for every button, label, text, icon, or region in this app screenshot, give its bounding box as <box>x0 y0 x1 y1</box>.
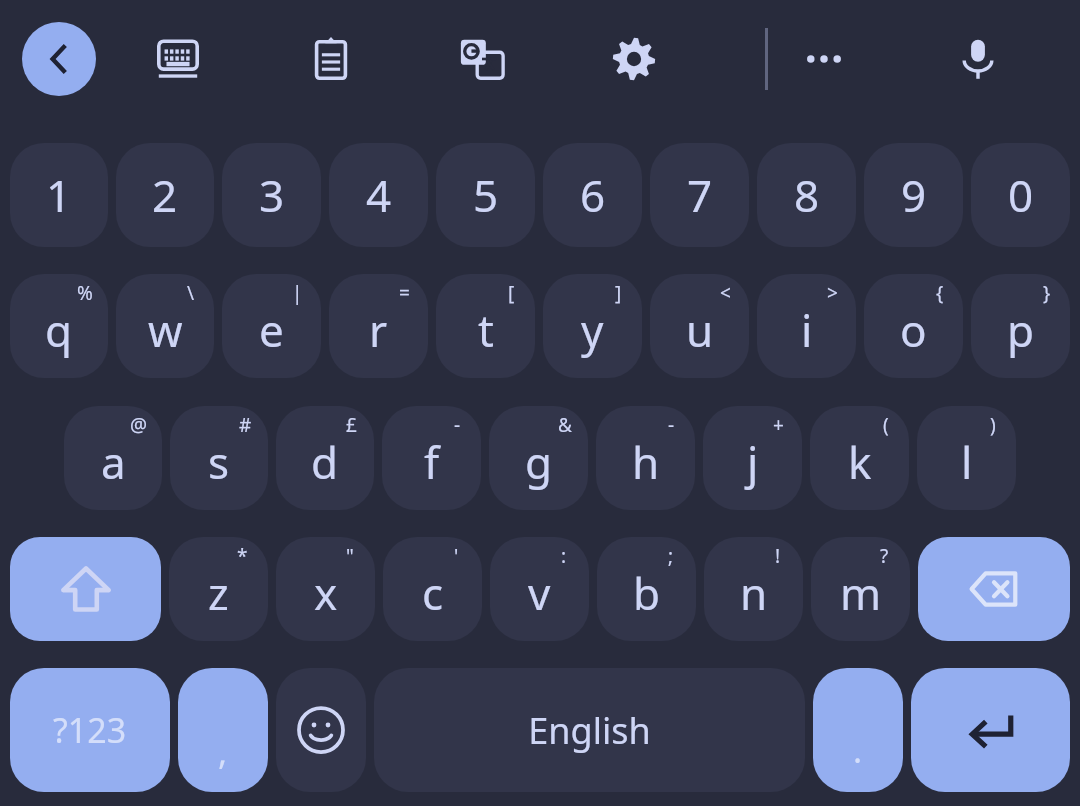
button[interactable]: o <box>864 274 963 378</box>
staticText: ?123 <box>53 707 127 753</box>
staticText: 8 <box>794 165 820 225</box>
button[interactable]: n <box>704 537 803 641</box>
button[interactable]: 2 <box>116 143 214 247</box>
staticText: " <box>346 543 354 569</box>
button[interactable]: v <box>490 537 589 641</box>
staticText: q <box>45 300 73 360</box>
staticText: , <box>218 729 228 775</box>
button[interactable]: u <box>650 274 749 378</box>
staticText: ] <box>615 280 622 306</box>
button[interactable]: x <box>276 537 375 641</box>
staticText: 7 <box>687 165 713 225</box>
staticText: n <box>740 563 768 623</box>
button[interactable]: 9 <box>864 143 963 247</box>
button[interactable]: 6 <box>543 143 642 247</box>
button[interactable]: English <box>374 668 805 792</box>
staticText: ; <box>668 543 674 569</box>
staticText: [ <box>508 280 515 306</box>
staticText: # <box>239 412 252 438</box>
button[interactable]: Emoji <box>276 668 366 792</box>
staticText: w <box>148 300 183 360</box>
button[interactable]: k <box>810 406 909 510</box>
staticText: - <box>668 412 675 438</box>
staticText: 1 <box>46 165 72 225</box>
button[interactable]: 7 <box>650 143 749 247</box>
staticText: 5 <box>473 165 499 225</box>
staticText: l <box>961 432 973 492</box>
button[interactable]: Back <box>22 22 96 96</box>
button[interactable]: More options <box>787 22 861 96</box>
button[interactable]: Clipboard <box>294 22 368 96</box>
staticText: 9 <box>901 165 927 225</box>
button[interactable]: 1 <box>10 143 108 247</box>
button[interactable]: q <box>10 274 108 378</box>
staticText: j <box>747 432 759 492</box>
button[interactable]: i <box>757 274 856 378</box>
button[interactable]: h <box>596 406 695 510</box>
staticText: 3 <box>259 165 285 225</box>
staticText: * <box>237 543 248 569</box>
button[interactable]: Period <box>813 668 903 792</box>
staticText: 4 <box>366 165 392 225</box>
button[interactable]: j <box>703 406 802 510</box>
staticText: { <box>936 280 944 306</box>
button[interactable]: 4 <box>329 143 428 247</box>
button[interactable]: y <box>543 274 642 378</box>
button[interactable]: r <box>329 274 428 378</box>
staticText: £ <box>346 412 357 438</box>
button[interactable]: d <box>276 406 374 510</box>
button[interactable]: z <box>169 537 268 641</box>
button[interactable]: t <box>436 274 535 378</box>
staticText: English <box>528 706 651 755</box>
staticText: | <box>292 280 303 306</box>
button[interactable]: e <box>222 274 321 378</box>
staticText: @ <box>130 412 148 438</box>
staticText: . <box>853 727 863 773</box>
staticText: y <box>581 300 604 360</box>
button[interactable]: Translate <box>445 22 519 96</box>
button[interactable]: Keyboard <box>141 22 215 96</box>
staticText: ! <box>775 543 781 569</box>
staticText: + <box>773 412 784 438</box>
staticText: % <box>77 280 93 306</box>
button[interactable]: 8 <box>757 143 856 247</box>
staticText: z <box>208 563 229 623</box>
staticText: h <box>632 432 660 492</box>
staticText: d <box>311 432 339 492</box>
button[interactable]: a <box>64 406 162 510</box>
button[interactable]: g <box>489 406 588 510</box>
button[interactable]: Backspace <box>918 537 1070 641</box>
button[interactable]: ?123 <box>10 668 170 792</box>
staticText: } <box>1043 280 1051 306</box>
staticText: o <box>900 300 927 360</box>
button[interactable]: p <box>971 274 1070 378</box>
staticText: \ <box>187 280 195 306</box>
staticText: ' <box>454 543 459 569</box>
staticText: m <box>840 563 882 623</box>
button[interactable]: Settings <box>597 22 671 96</box>
staticText: = <box>399 280 410 306</box>
button[interactable]: Voice input <box>941 22 1015 96</box>
button[interactable]: Shift <box>10 537 161 641</box>
button[interactable]: m <box>811 537 910 641</box>
staticText: e <box>259 300 284 360</box>
staticText: i <box>801 300 813 360</box>
staticText: s <box>208 432 230 492</box>
staticText: v <box>528 563 551 623</box>
button[interactable]: 3 <box>222 143 321 247</box>
staticText: r <box>369 300 388 360</box>
button[interactable]: f <box>382 406 481 510</box>
button[interactable]: 0 <box>971 143 1070 247</box>
button[interactable]: s <box>170 406 268 510</box>
staticText: u <box>686 300 714 360</box>
button[interactable]: l <box>917 406 1016 510</box>
staticText: ? <box>880 543 889 569</box>
button[interactable]: b <box>597 537 696 641</box>
button[interactable]: w <box>116 274 214 378</box>
staticText: - <box>454 412 461 438</box>
button[interactable]: 5 <box>436 143 535 247</box>
button[interactable]: c <box>383 537 482 641</box>
button[interactable]: Enter <box>911 668 1070 792</box>
staticText: < <box>720 280 731 306</box>
button[interactable]: Comma <box>178 668 268 792</box>
